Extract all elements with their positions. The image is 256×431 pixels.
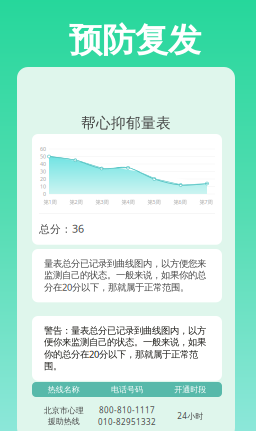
staticText: 第3周 [95, 198, 108, 206]
staticText: 第2周 [69, 198, 82, 206]
staticText: 50 [40, 153, 46, 160]
staticText: 警告：量表总分已记录到曲线图内，以方便你来监测自己的状态。一般来说，如果你的总分… [44, 325, 206, 372]
staticText: 第1周 [43, 198, 56, 206]
staticText: 量表总分已记录到曲线图内，以方便您来监测自己的状态。一般来说，如果你的总分在20… [44, 258, 206, 293]
staticText: 010-82951332 [98, 416, 156, 427]
staticText: 0 [43, 190, 46, 198]
staticText: 援助热线 [48, 416, 80, 426]
staticText: 800-810-1117 [99, 405, 155, 415]
staticText: 总分：36 [39, 222, 84, 236]
staticText: 第5周 [147, 198, 160, 206]
staticText: 开通时段 [174, 385, 206, 394]
staticText: 预防复发 [69, 20, 201, 61]
staticText: 30 [40, 168, 46, 175]
staticText: 10 [40, 183, 46, 190]
staticText: 60 [40, 145, 46, 153]
staticText: 帮心抑郁量表 [81, 114, 171, 132]
staticText: 电话号码 [111, 385, 143, 394]
staticText: 北京市心理 [44, 406, 84, 415]
staticText: 24小时 [177, 411, 203, 421]
staticText: 20 [40, 175, 46, 183]
staticText: 第7周 [199, 198, 212, 206]
staticText: 40 [40, 160, 46, 168]
staticText: 第6周 [173, 198, 186, 206]
staticText: 第4周 [121, 198, 134, 206]
staticText: 热线名称 [48, 385, 80, 394]
